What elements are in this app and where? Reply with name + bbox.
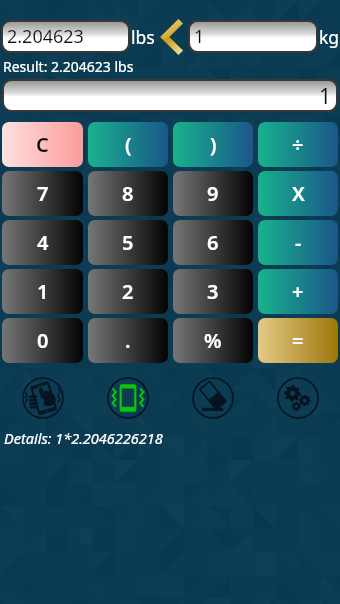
staticText: 5 xyxy=(122,229,134,256)
staticText: 9 xyxy=(207,180,219,207)
staticText: 7 xyxy=(37,180,49,207)
button[interactable]: 5 xyxy=(88,220,168,265)
button[interactable]: 1 xyxy=(190,22,316,51)
button[interactable]: Shake xyxy=(0,374,85,422)
button[interactable]: Erase xyxy=(170,374,255,422)
staticText: + xyxy=(292,278,304,305)
button[interactable]: Settings xyxy=(255,374,340,422)
staticText: X xyxy=(292,180,305,207)
staticText: ) xyxy=(210,131,217,158)
button[interactable]: 4 xyxy=(2,220,83,265)
staticText: . xyxy=(125,327,131,354)
button[interactable]: ÷ xyxy=(258,122,338,167)
button[interactable]: Vibrate xyxy=(85,374,170,422)
staticText: 2 xyxy=(122,278,134,305)
button[interactable]: 2.204623 xyxy=(3,22,128,51)
staticText: ( xyxy=(125,131,132,158)
button[interactable]: 3 xyxy=(173,269,253,314)
staticText: 6 xyxy=(207,229,219,256)
button[interactable]: . xyxy=(88,318,168,363)
button[interactable]: + xyxy=(258,269,338,314)
staticText: lbs xyxy=(131,25,155,49)
button[interactable]: X xyxy=(258,171,338,216)
staticText: kg xyxy=(319,25,340,49)
staticText: 1 xyxy=(37,278,49,305)
button[interactable]: 7 xyxy=(2,171,83,216)
button[interactable]: 6 xyxy=(173,220,253,265)
button[interactable]: 2 xyxy=(88,269,168,314)
button[interactable]: % xyxy=(173,318,253,363)
button[interactable]: 8 xyxy=(88,171,168,216)
button[interactable]: C xyxy=(2,122,83,167)
staticText: Details: 1*2.2046226218 xyxy=(4,428,163,448)
button[interactable]: 1 xyxy=(4,81,336,110)
staticText: C xyxy=(36,131,49,158)
staticText: 1 xyxy=(319,81,332,110)
button[interactable]: ) xyxy=(173,122,253,167)
button[interactable]: = xyxy=(258,318,338,363)
staticText: 8 xyxy=(122,180,134,207)
staticText: ÷ xyxy=(292,131,304,158)
button[interactable]: - xyxy=(258,220,338,265)
button[interactable]: 9 xyxy=(173,171,253,216)
staticText: 4 xyxy=(37,229,49,256)
button[interactable]: 1 xyxy=(2,269,83,314)
button[interactable]: ( xyxy=(88,122,168,167)
button[interactable]: 0 xyxy=(2,318,83,363)
staticText: Result: 2.204623 lbs xyxy=(3,57,134,76)
staticText: 3 xyxy=(207,278,219,305)
staticText: 1 xyxy=(194,24,205,49)
staticText: - xyxy=(295,229,302,256)
staticText: = xyxy=(292,327,304,354)
staticText: 2.204623 xyxy=(7,24,84,49)
staticText: % xyxy=(204,327,222,354)
staticText: 0 xyxy=(37,327,49,354)
